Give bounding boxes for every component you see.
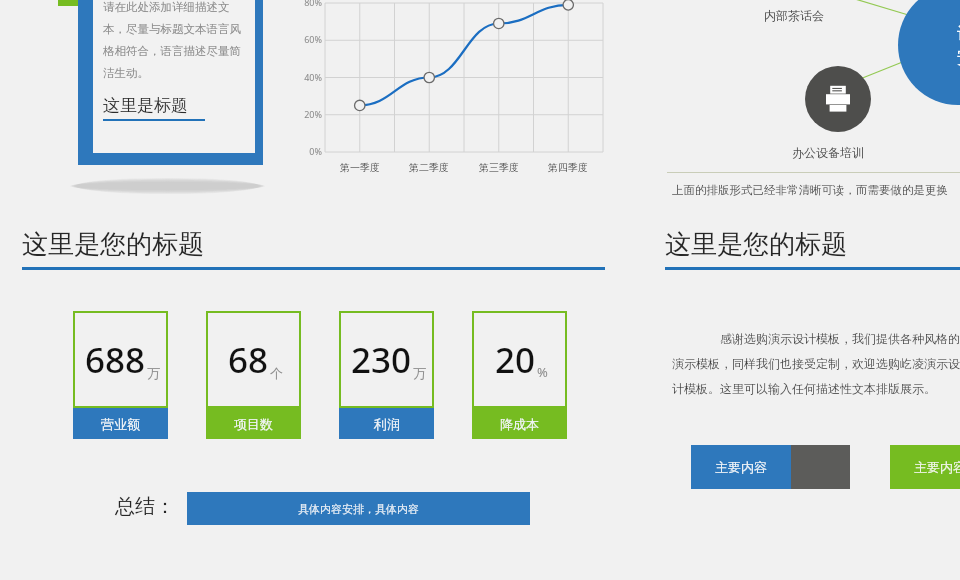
button[interactable]: 68 <box>206 311 301 439</box>
staticText: 这里是您的标题 <box>665 228 847 261</box>
staticText: 0% <box>298 145 322 157</box>
staticText: 营业额 <box>101 416 140 432</box>
staticText: 主要内容 <box>715 459 767 475</box>
staticText: 总结： <box>115 494 175 519</box>
button[interactable]: 230 <box>339 311 434 439</box>
staticText: % <box>537 363 548 381</box>
button[interactable]: 主要内容 <box>691 445 791 489</box>
staticText: 利润 <box>374 416 400 432</box>
staticText: 万 <box>147 365 160 381</box>
staticText: 20 <box>495 336 536 384</box>
staticText: 办公设备培训 <box>792 145 864 160</box>
staticText: 20% <box>298 108 322 120</box>
staticText: 688 <box>85 336 146 384</box>
button[interactable]: 计划 安排 <box>898 0 960 105</box>
button[interactable]: 688 <box>73 311 168 439</box>
staticText: 68 <box>228 336 269 384</box>
staticText: 计划 安排 <box>957 23 960 68</box>
staticText: 感谢选购演示设计模板，我们提供各种风格的演示模板，同样我们也接受定制，欢迎选购屹… <box>672 330 960 396</box>
staticText: 230 <box>351 336 412 384</box>
staticText: 个 <box>270 365 283 381</box>
button[interactable]: 具体内容安排，具体内容 <box>187 492 530 525</box>
button[interactable]: 主要内容 <box>890 445 960 489</box>
staticText: 请在此处添加详细描述文本，尽量与标题文本语言风格相符合，语言描述尽量简洁生动。 <box>103 0 248 81</box>
button[interactable]: 办公设备培训 <box>805 66 871 132</box>
staticText: 第二季度 <box>404 161 454 174</box>
staticText: 项目数 <box>234 416 273 432</box>
staticText: 第一季度 <box>335 161 385 174</box>
button[interactable]: 20 <box>472 311 567 439</box>
staticText: 这里是您的标题 <box>22 228 204 261</box>
staticText: 80% <box>298 0 322 8</box>
staticText: 具体内容安排，具体内容 <box>298 502 419 516</box>
button[interactable] <box>78 0 263 165</box>
staticText: 万 <box>413 365 426 381</box>
staticText: 40% <box>298 71 322 83</box>
staticText: 内部茶话会 <box>764 8 824 23</box>
staticText: 主要内容 <box>914 459 960 475</box>
staticText: 降成本 <box>500 416 539 432</box>
staticText: 60% <box>298 33 322 45</box>
staticText: 上面的排版形式已经非常清晰可读，而需要做的是更换 <box>672 183 948 197</box>
staticText: 这里是标题 <box>103 95 188 116</box>
staticText: 第四季度 <box>543 161 593 174</box>
staticText: 第三季度 <box>474 161 524 174</box>
